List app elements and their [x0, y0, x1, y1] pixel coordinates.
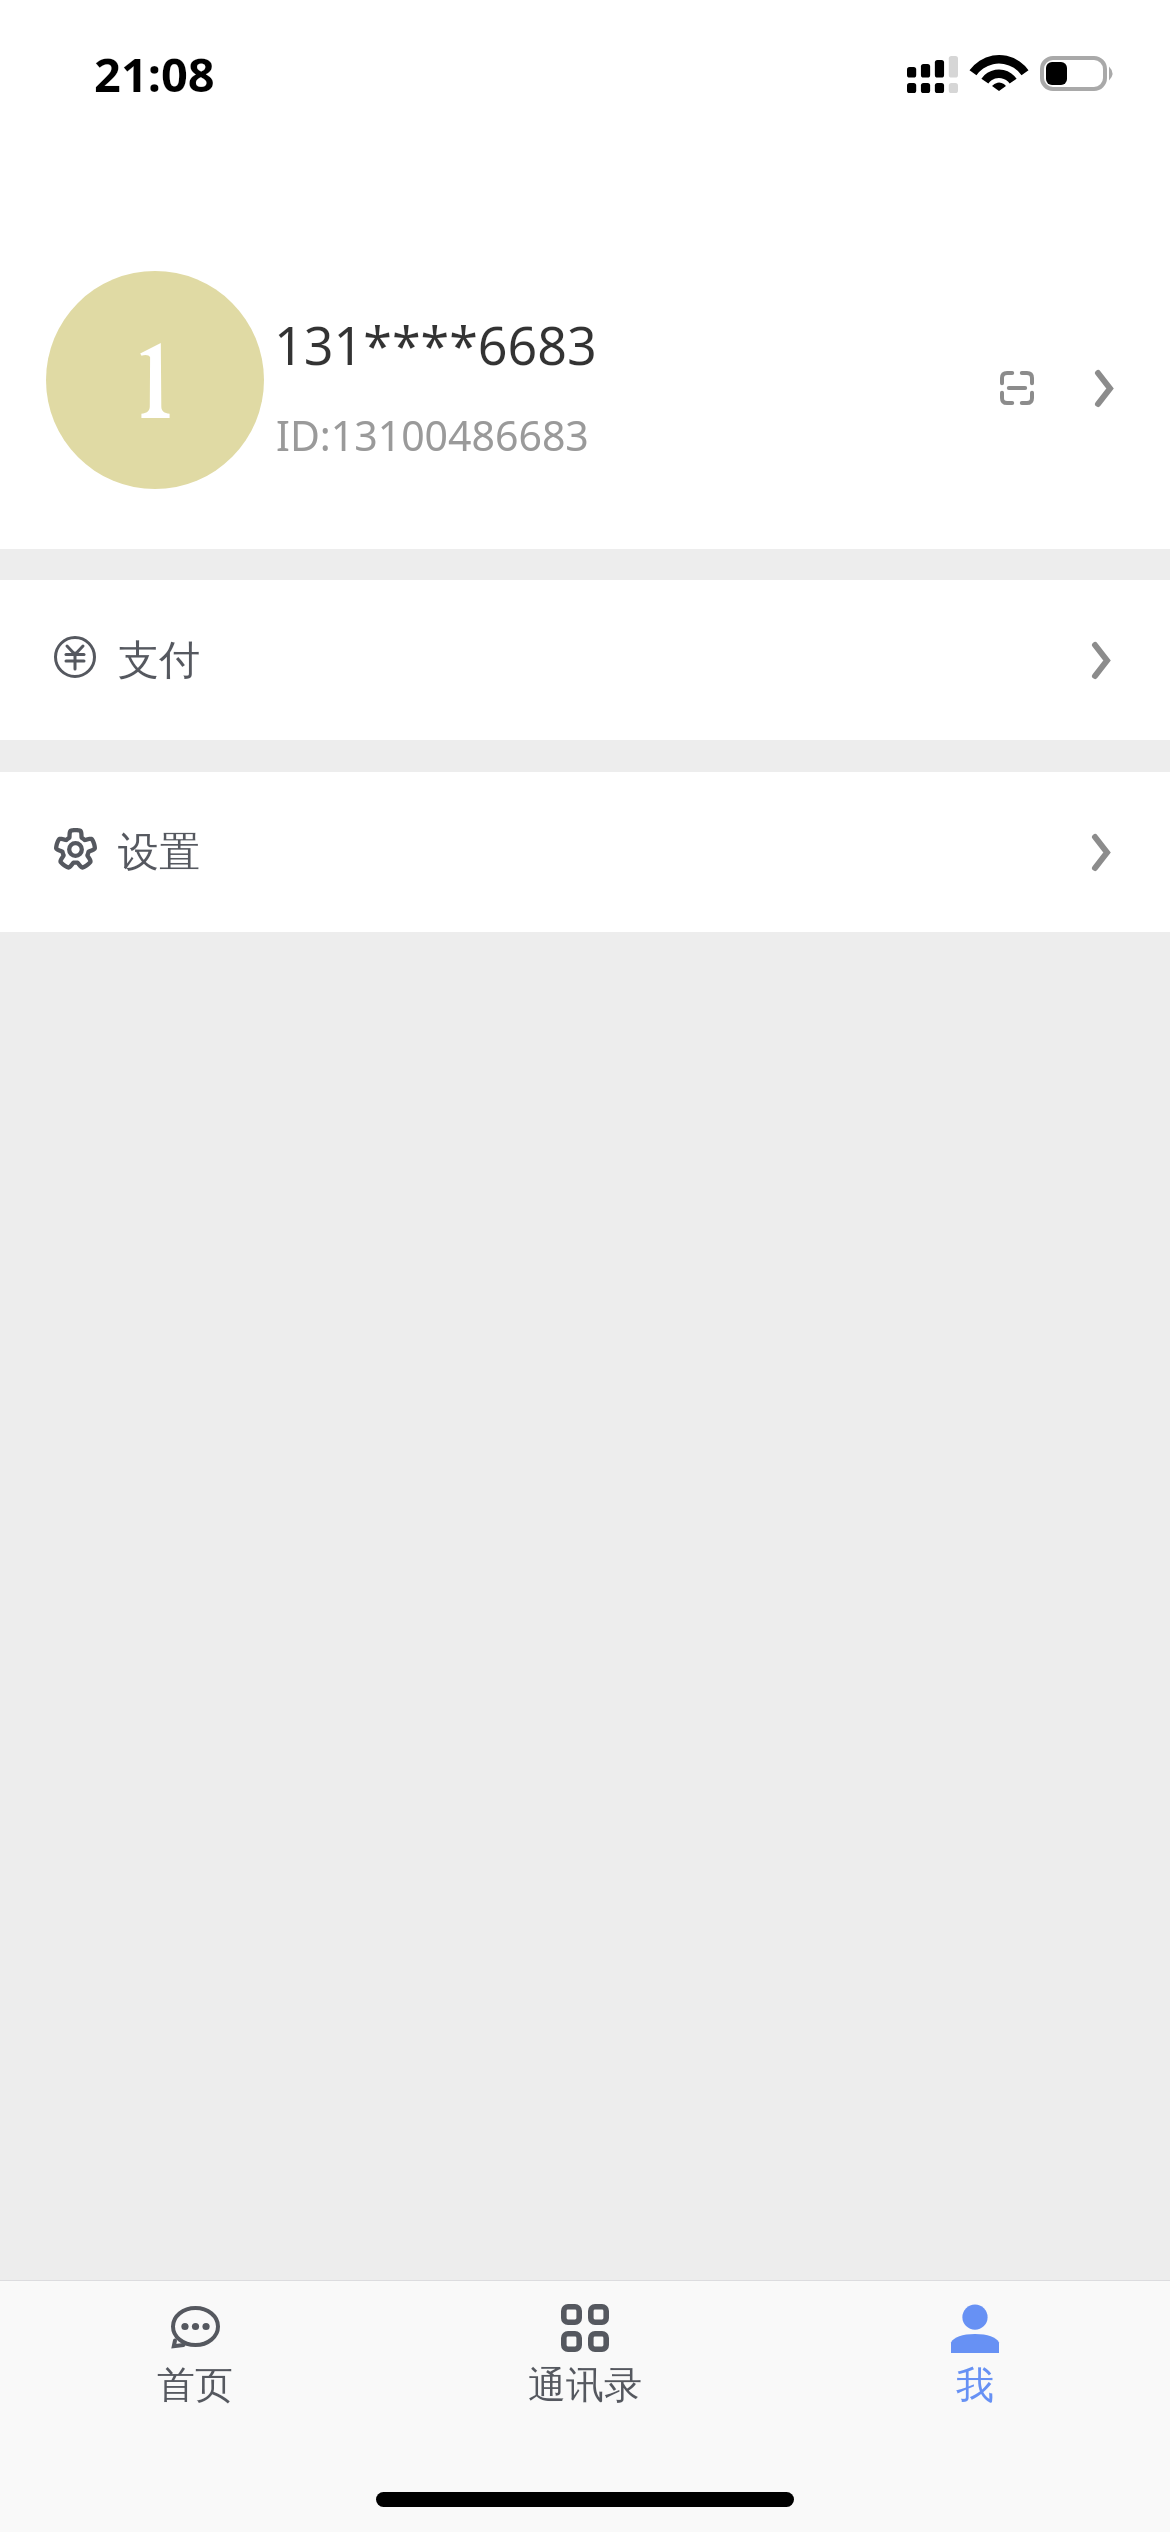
- staticText: 首页: [157, 2361, 233, 2409]
- button[interactable]: 我: [780, 2280, 1170, 2440]
- staticText: 设置: [118, 827, 200, 879]
- button[interactable]: Scan QR code: [977, 348, 1057, 428]
- staticText: 21:08: [94, 42, 215, 106]
- button[interactable]: 131****6683: [0, 240, 1170, 520]
- staticText: 通讯录: [528, 2361, 642, 2409]
- button[interactable]: 通讯录: [390, 2280, 780, 2440]
- button[interactable]: 设置: [0, 772, 1170, 932]
- button[interactable]: 支付: [0, 580, 1170, 740]
- staticText: 131****6683: [274, 309, 597, 380]
- button[interactable]: Open profile details: [1068, 352, 1140, 424]
- staticText: ID:13100486683: [276, 407, 589, 463]
- button[interactable]: 首页: [0, 2280, 390, 2440]
- staticText: 支付: [118, 635, 200, 687]
- staticText: 我: [956, 2361, 994, 2409]
